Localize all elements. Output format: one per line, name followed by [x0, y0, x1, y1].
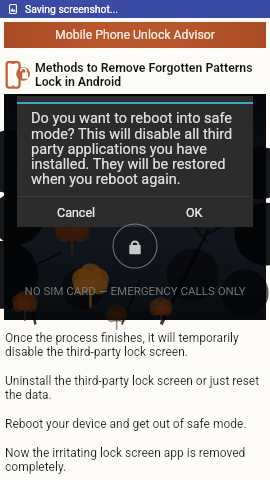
button[interactable]: Mobile Phone Unlock Advisor	[4, 22, 266, 48]
staticText: Uninstall the third-party lock screen or…	[5, 374, 260, 402]
staticText: Do you want to reboot into safe mode? Th…	[31, 110, 247, 187]
staticText: Reboot your device and get out of safe m…	[5, 417, 247, 431]
staticText: Mobile Phone Unlock Advisor	[55, 28, 216, 42]
other: Article icon	[5, 59, 32, 89]
staticText: Methods to Remove Forgotten Patterns Loc…	[35, 61, 262, 89]
button[interactable]: Cancel	[17, 197, 135, 227]
staticText: Once the process finishes, it will tempo…	[5, 331, 260, 359]
staticText: OK	[186, 205, 203, 220]
staticText: NO SIM CARD — EMERGENCY CALLS ONLY	[4, 284, 266, 297]
staticText: Saving screenshot...	[25, 3, 119, 15]
staticText: Cancel	[57, 205, 96, 220]
staticText: Now the irritating lock screen app is re…	[5, 446, 260, 474]
button[interactable]: OK	[135, 197, 253, 227]
